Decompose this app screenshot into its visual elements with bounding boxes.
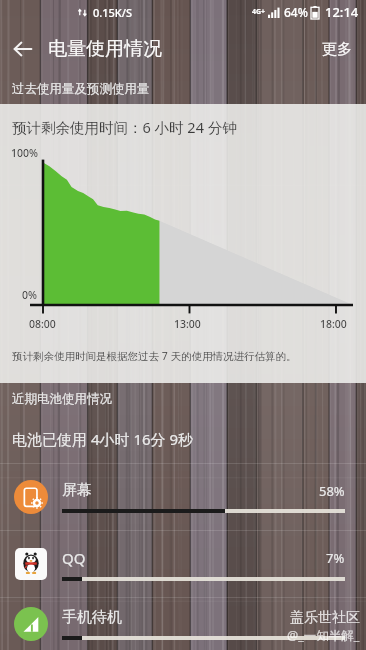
staticText: 0.15K/S [93, 5, 133, 20]
staticText: 12:14 [325, 3, 359, 21]
button[interactable]: 电池已使用 4小时 16分 9秒 [0, 415, 366, 463]
staticText: 近期电池使用情况 [12, 391, 112, 407]
staticText: 64% [284, 4, 308, 20]
staticText: 手机待机 [62, 608, 122, 627]
staticText: 4G+ [252, 7, 266, 17]
button[interactable]: 更多 [308, 28, 366, 71]
staticText: 盖乐世社区 [290, 609, 360, 627]
button[interactable]: QQ [0, 531, 366, 597]
staticText: 屏幕 [62, 481, 92, 500]
staticText: 08:00 [29, 317, 56, 331]
staticText: 过去使用量及预测使用量 [12, 81, 150, 97]
staticText: 100% [11, 146, 38, 160]
staticText: 7% [326, 549, 345, 567]
staticText: 预计剩余使用时间是根据您过去 7 天的使用情况进行估算的。 [12, 349, 297, 363]
button[interactable]: 屏幕 [0, 464, 366, 530]
staticText: 更多 [322, 40, 352, 59]
staticText: @_一知半解_ [287, 627, 360, 644]
staticText: 电量使用情况 [48, 37, 162, 61]
staticText: QQ [62, 548, 86, 568]
staticText: 电池已使用 4小时 16分 9秒 [12, 429, 194, 449]
button[interactable]: 手机待机 [0, 598, 366, 650]
button[interactable]: Back [0, 26, 46, 72]
staticText: 13:00 [174, 317, 201, 331]
staticText: 18:00 [320, 317, 347, 331]
staticText: 预计剩余使用时间：6 小时 24 分钟 [12, 117, 237, 137]
staticText: 58% [319, 482, 345, 500]
staticText: 0% [22, 288, 37, 302]
